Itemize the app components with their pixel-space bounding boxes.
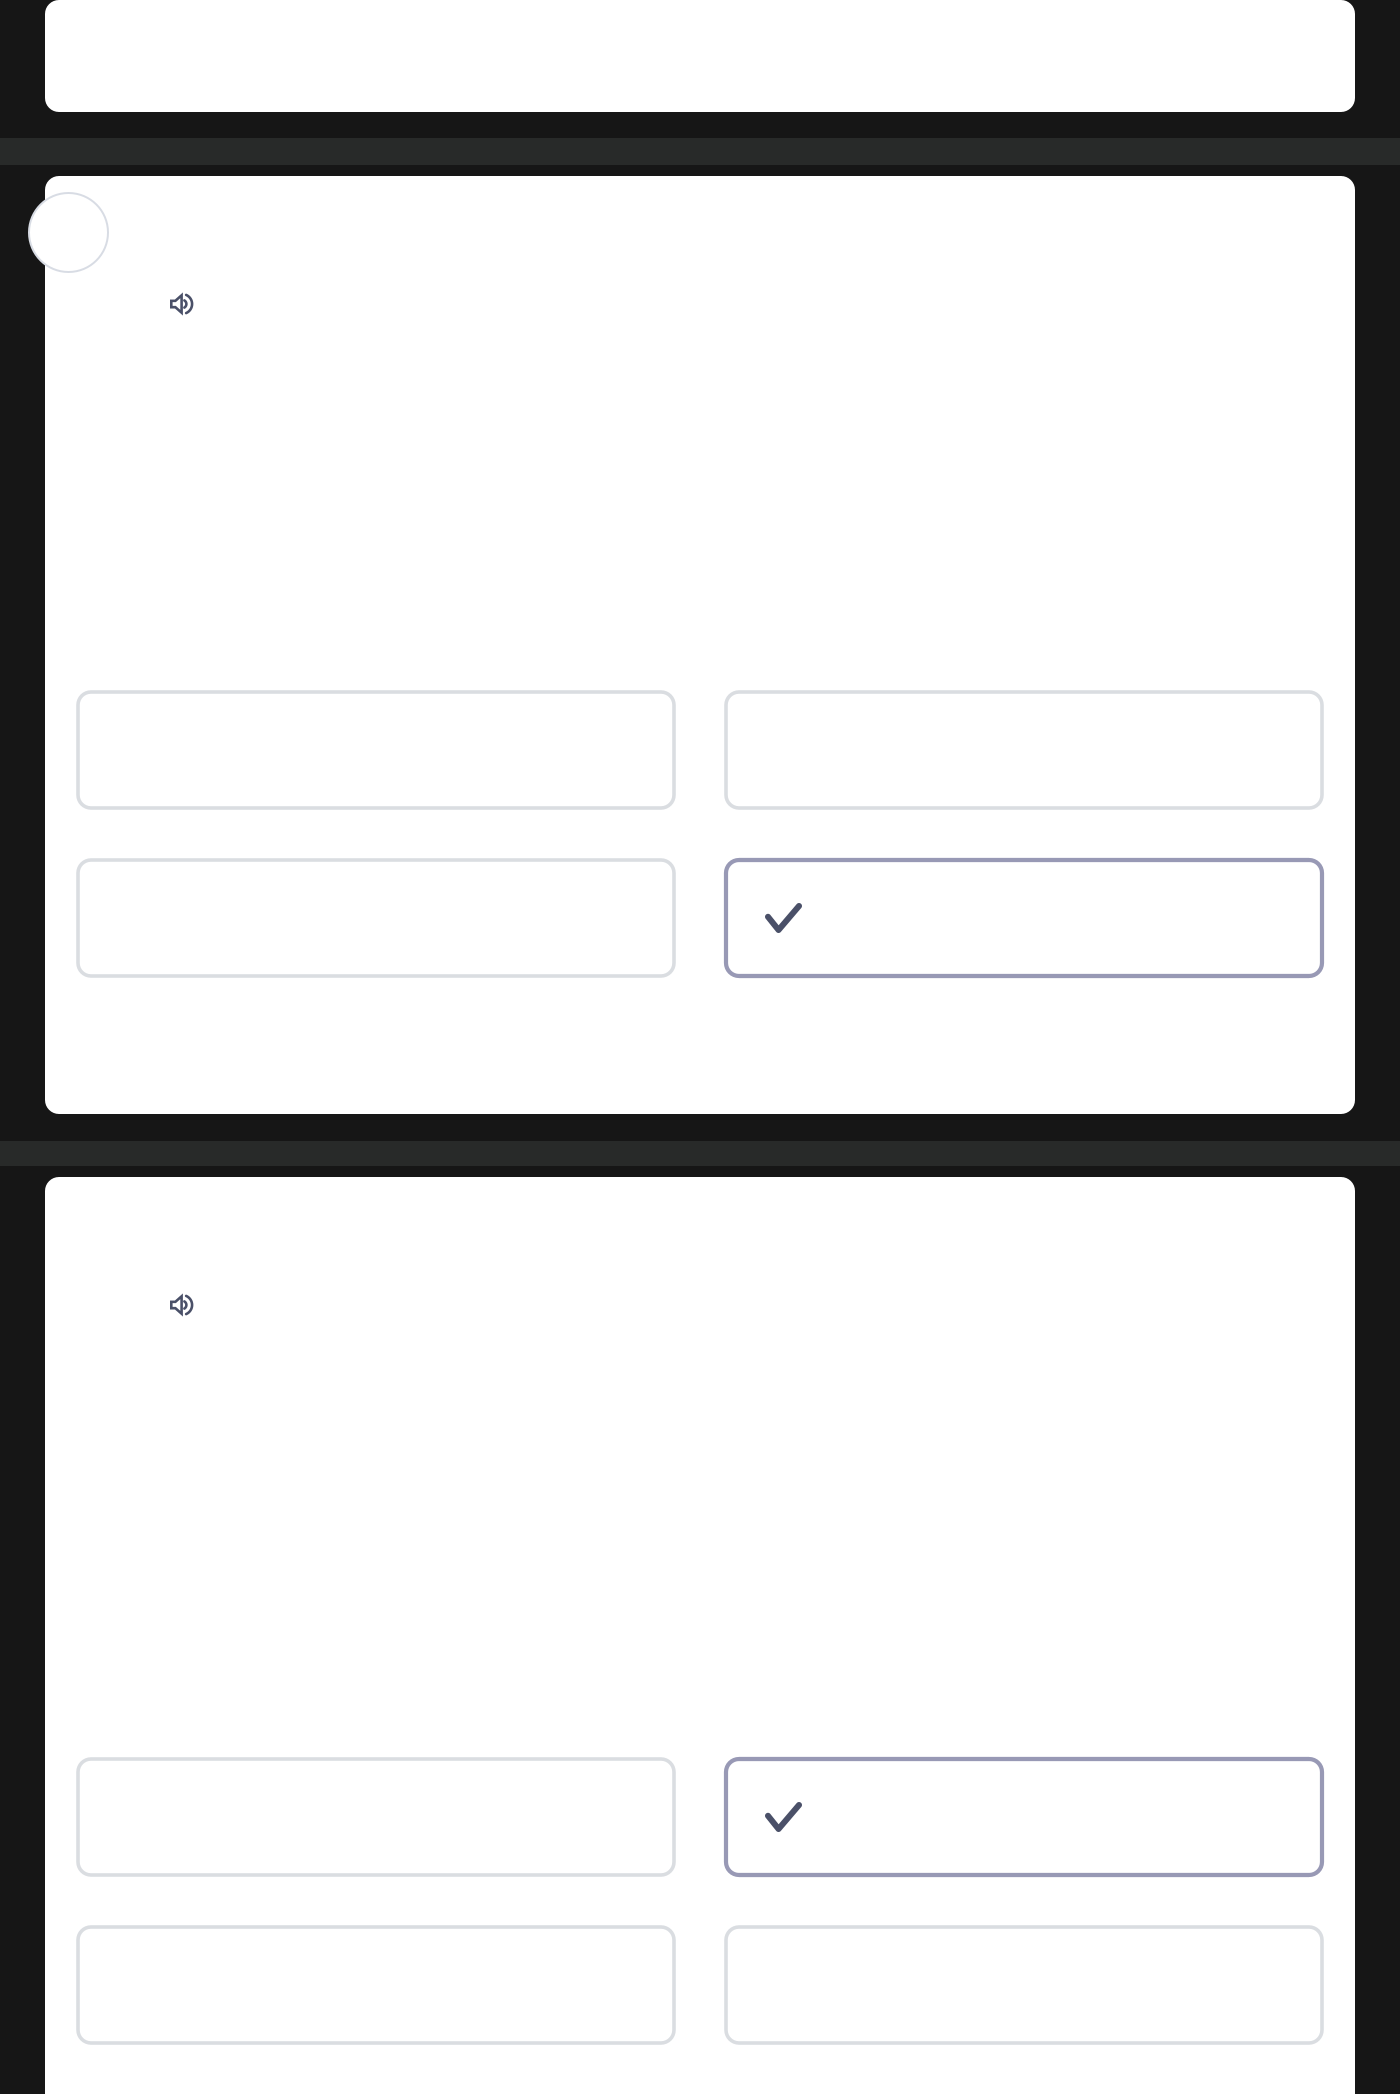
button[interactable]: die Ankunft <box>726 692 1322 808</box>
button[interactable]: im Zug <box>78 1927 674 2043</box>
button[interactable]: der Bahnhof <box>78 692 674 808</box>
button[interactable]: auf dem Bahnsteig <box>726 1759 1322 1875</box>
button[interactable]: am Schalter <box>78 1759 674 1875</box>
button[interactable]: der Koffer <box>78 860 674 976</box>
button[interactable]: die Auskunft <box>726 1927 1322 2043</box>
button[interactable]: Play audio <box>170 292 194 316</box>
button[interactable]: Play audio <box>170 1293 194 1317</box>
button[interactable]: die Fahrkarte <box>726 860 1322 976</box>
